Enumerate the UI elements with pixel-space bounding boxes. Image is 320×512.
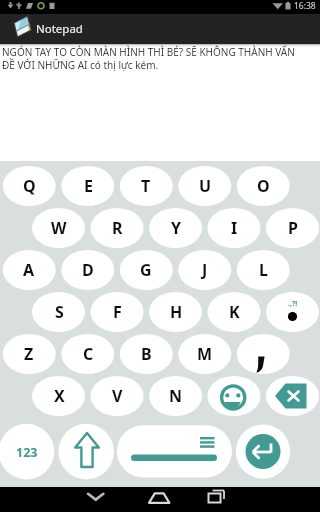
staticText: E [84, 175, 93, 197]
staticText: M [197, 343, 213, 365]
staticText: ĐỀ VỚI NHỮNG AI có thị lực kém. [2, 58, 159, 71]
staticText: U [199, 175, 212, 197]
staticText: W [51, 217, 67, 239]
staticText: T [141, 175, 151, 197]
staticText: N [169, 385, 183, 407]
staticText: L [259, 259, 268, 281]
staticText: D [82, 259, 94, 281]
staticText: R [112, 217, 123, 239]
staticText: O [257, 175, 270, 197]
staticText: 16:38 [294, 0, 316, 12]
staticText: X [54, 385, 65, 407]
staticText: J [202, 259, 208, 281]
staticText: G [140, 259, 152, 281]
staticText: S [55, 301, 64, 323]
staticText: .,?! [288, 299, 298, 309]
staticText: Q [23, 175, 36, 197]
staticText: H [170, 301, 183, 323]
staticText: Y [171, 217, 182, 239]
staticText: K [229, 301, 240, 323]
staticText: P [288, 217, 298, 239]
staticText: A [23, 259, 35, 281]
staticText: F [113, 301, 122, 323]
staticText: 123 [16, 444, 38, 461]
staticText: V [112, 385, 123, 407]
staticText: Z [24, 343, 34, 365]
staticText: Notepad [36, 21, 83, 37]
staticText: NGÓN TAY TO CÒN MÀN HÌNH THÌ BÉ? SẼ KHÔN… [2, 45, 295, 58]
staticText: I [231, 217, 238, 239]
staticText: C [83, 343, 94, 365]
staticText: B [141, 343, 152, 365]
